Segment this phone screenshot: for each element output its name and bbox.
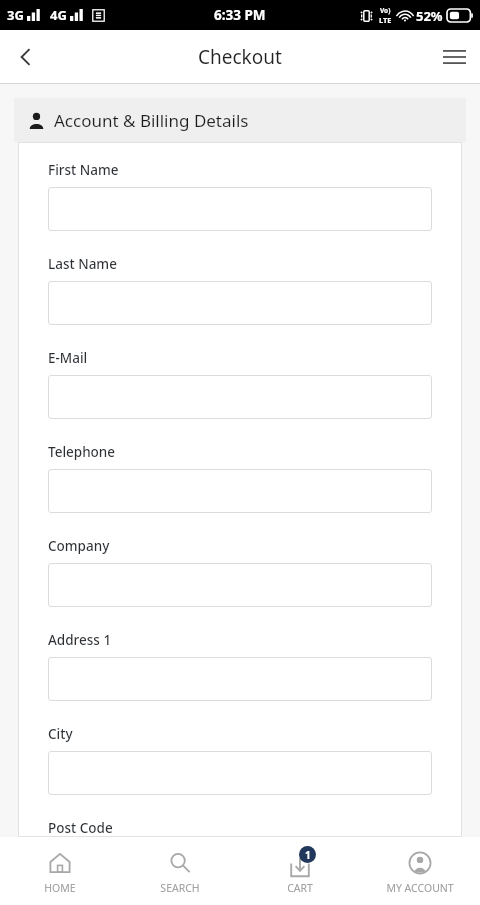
staticText: Account & Billing Details	[54, 109, 249, 132]
staticText: Last Name	[48, 255, 117, 273]
staticText: SEARCH	[160, 881, 200, 895]
button[interactable]	[48, 657, 432, 701]
button[interactable]: SEARCH	[120, 837, 240, 905]
staticText: E-Mail	[48, 349, 88, 367]
button[interactable]	[48, 563, 432, 607]
staticText: First Name	[48, 161, 119, 179]
button[interactable]	[48, 187, 432, 231]
button[interactable]: Back	[0, 31, 52, 83]
staticText: Vo)	[380, 6, 391, 15]
button[interactable]: MY ACCOUNT	[360, 837, 480, 905]
button[interactable]: 1	[240, 837, 360, 905]
staticText: 52%	[416, 7, 443, 25]
staticText: CART	[287, 881, 313, 895]
staticText: Address 1	[48, 631, 112, 649]
button[interactable]	[48, 375, 432, 419]
staticText: Telephone	[48, 443, 116, 461]
staticText: HOME	[44, 881, 76, 895]
staticText: City	[48, 725, 73, 743]
button[interactable]	[48, 751, 432, 795]
button[interactable]: HOME	[0, 837, 120, 905]
staticText: MY ACCOUNT	[386, 881, 454, 895]
staticText: LTE	[379, 15, 392, 25]
staticText: 1	[305, 848, 311, 862]
button[interactable]: Menu	[428, 31, 480, 83]
staticText: 3G	[7, 6, 24, 24]
staticText: 6:33 PM	[214, 6, 266, 24]
staticText: 4G	[50, 6, 67, 24]
staticText: Checkout	[198, 44, 282, 70]
button[interactable]	[48, 281, 432, 325]
staticText: Post Code	[48, 819, 113, 837]
button[interactable]	[48, 469, 432, 513]
staticText: Company	[48, 537, 110, 555]
